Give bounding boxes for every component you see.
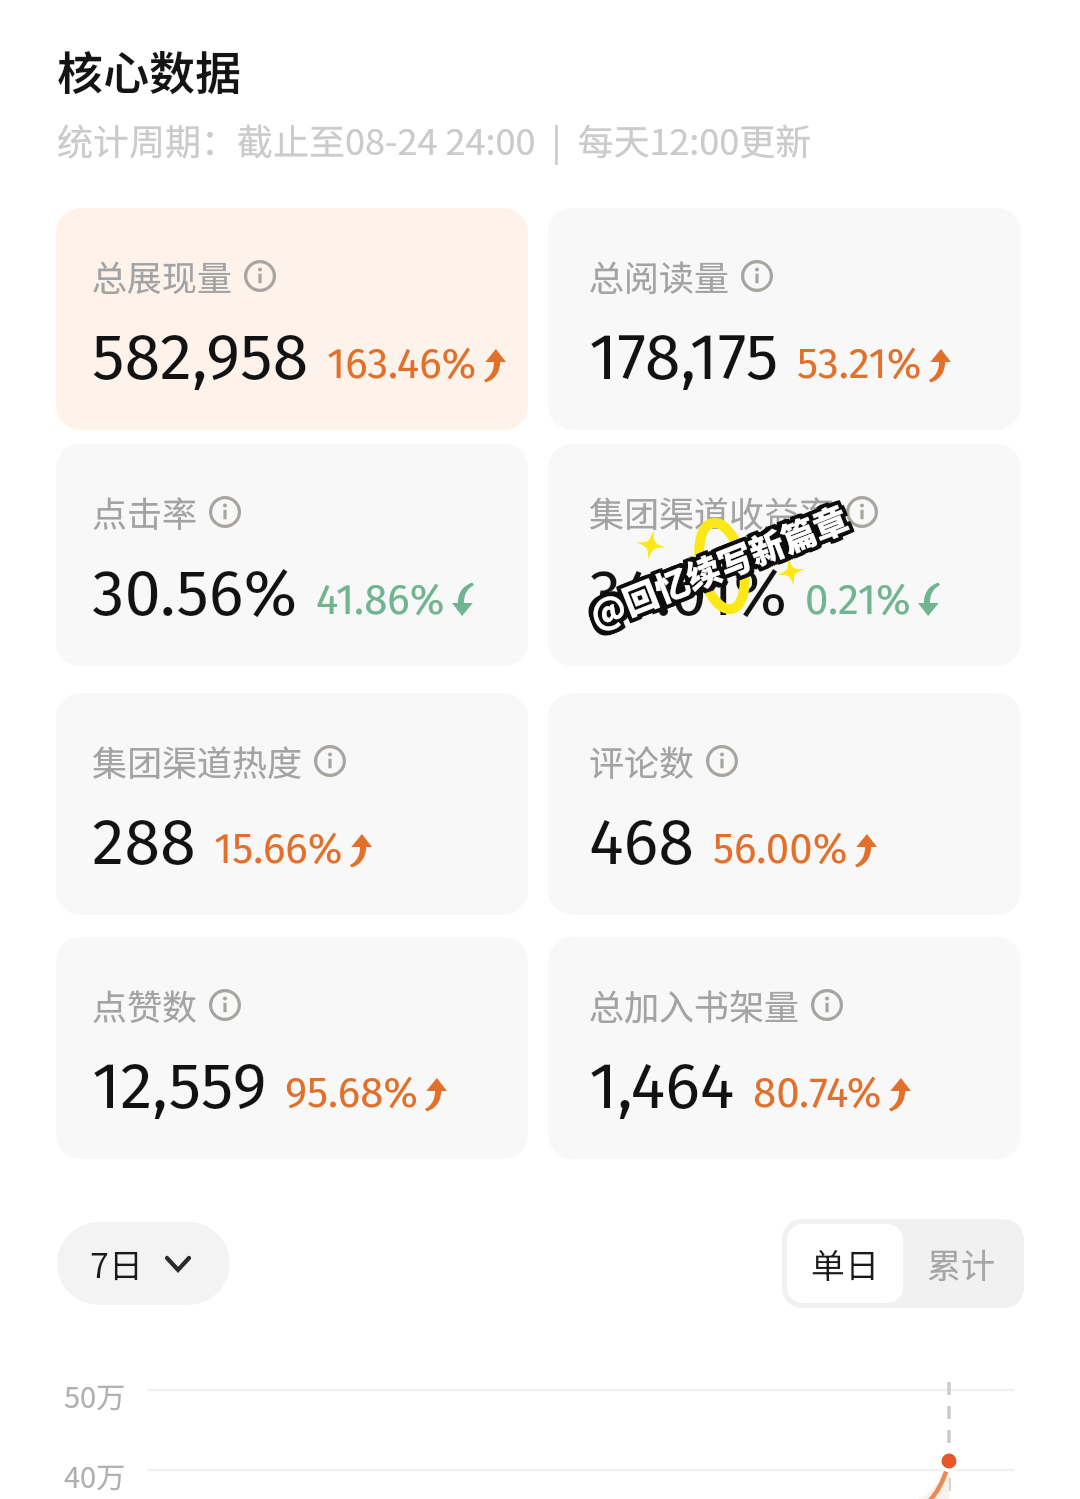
staticText: @回忆续写新篇章 (580, 493, 853, 639)
staticText: 核心数据 (57, 37, 241, 104)
staticText: @回忆续写新篇章 (582, 488, 855, 634)
other: 说明 (706, 745, 738, 777)
button[interactable]: 总加入书架量 (548, 937, 1021, 1159)
staticText: 41.86% (316, 575, 445, 625)
button[interactable]: 点击率 (56, 444, 528, 666)
staticText: 178,175 (589, 318, 779, 396)
other: 说明 (741, 260, 773, 292)
staticText: @回忆续写新篇章 (583, 496, 856, 642)
staticText: @回忆续写新篇章 (579, 496, 852, 642)
staticText: 点赞数 (92, 979, 198, 1030)
staticText: 34.01% (589, 554, 787, 632)
staticText: 468 (589, 803, 695, 881)
staticText: 统计周期：截止至08-24 24:00 | 每天12:00更新 (57, 113, 812, 165)
staticText: 80.74% (753, 1068, 882, 1118)
other: 说明 (209, 496, 241, 528)
staticText: 累计 (927, 1239, 995, 1288)
staticText: @回忆续写新篇章 (584, 494, 857, 640)
staticText: @回忆续写新篇章 (577, 492, 850, 638)
button[interactable]: 集团渠道收益率 (548, 444, 1021, 666)
button[interactable]: 点赞数 (56, 937, 528, 1159)
other: 选择时间范围 (165, 1256, 191, 1272)
staticText: 288 (92, 803, 196, 881)
staticText: @回忆续写新篇章 (583, 490, 856, 636)
staticText: 总阅读量 (589, 250, 730, 301)
button[interactable]: 7日 (57, 1222, 230, 1305)
staticText: @回忆续写新篇章 (581, 495, 853, 641)
button[interactable]: 总阅读量 (548, 208, 1021, 430)
other: 说明 (209, 989, 241, 1021)
staticText: @回忆续写新篇章 (581, 497, 854, 643)
staticText: 15.66% (214, 824, 343, 874)
staticText: 30.56% (92, 554, 298, 632)
other: 说明 (244, 260, 276, 292)
staticText: @回忆续写新篇章 (585, 491, 858, 637)
staticText: 163.46% (327, 339, 477, 389)
staticText: @回忆续写新篇章 (576, 490, 849, 636)
staticText: @回忆续写新篇章 (584, 492, 856, 638)
staticText: @回忆续写新篇章 (586, 493, 859, 639)
staticText: 0.21% (805, 575, 911, 625)
staticText: 集团渠道收益率 (589, 486, 835, 537)
staticText: 40万 (64, 1454, 126, 1496)
button[interactable]: 累计 (903, 1224, 1019, 1303)
button[interactable]: 集团渠道热度 (56, 693, 528, 915)
staticText: 单日 (811, 1239, 879, 1288)
button[interactable]: 单日 (787, 1224, 903, 1303)
staticText: @回忆续写新篇章 (585, 495, 858, 641)
staticText: 50万 (64, 1374, 126, 1416)
staticText: @回忆续写新篇章 (582, 492, 855, 638)
staticText: @回忆续写新篇章 (585, 489, 858, 635)
button[interactable]: 评论数 (548, 693, 1021, 915)
staticText: 53.21% (797, 339, 922, 389)
staticText: 总展现量 (92, 250, 233, 301)
other: 说明 (811, 989, 843, 1021)
staticText: 总加入书架量 (589, 979, 800, 1030)
staticText: 点击率 (92, 486, 198, 537)
staticText: 95.68% (285, 1068, 418, 1118)
staticText: @回忆续写新篇章 (584, 487, 857, 633)
staticText: 56.00% (713, 824, 848, 874)
staticText: 12,559 (92, 1047, 267, 1125)
staticText: 集团渠道热度 (92, 735, 303, 786)
other: 说明 (314, 745, 346, 777)
other: 说明 (846, 496, 878, 528)
staticText: 7日 (90, 1239, 143, 1288)
staticText: @回忆续写新篇章 (579, 498, 852, 644)
staticText: 评论数 (589, 735, 695, 786)
staticText: @回忆续写新篇章 (580, 489, 853, 635)
staticText: @回忆续写新篇章 (578, 489, 851, 635)
staticText: @回忆续写新篇章 (587, 495, 860, 641)
staticText: @回忆续写新篇章 (581, 491, 854, 637)
button[interactable]: 总展现量 (56, 208, 528, 430)
staticText: 582,958 (92, 318, 309, 396)
staticText: @回忆续写新篇章 (579, 491, 852, 637)
staticText: @回忆续写新篇章 (578, 494, 851, 640)
staticText: 1,464 (589, 1047, 735, 1125)
staticText: @回忆续写新篇章 (582, 494, 855, 640)
